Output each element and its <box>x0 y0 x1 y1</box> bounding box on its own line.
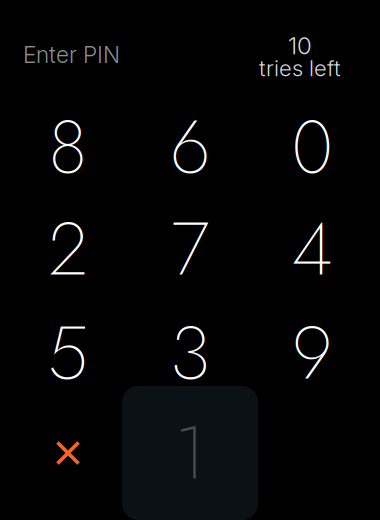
button[interactable]: Clear <box>7 408 129 498</box>
staticText: 6 <box>170 94 210 200</box>
button[interactable]: 7 <box>129 198 251 300</box>
staticText: 7 <box>171 196 209 302</box>
button[interactable]: 5 <box>7 302 129 404</box>
button[interactable]: 3 <box>129 302 251 404</box>
button[interactable]: 2 <box>7 198 129 300</box>
staticText: 0 <box>291 94 332 200</box>
staticText: 5 <box>47 300 88 406</box>
staticText: 3 <box>170 300 210 406</box>
staticText: 4 <box>291 196 332 302</box>
staticText: 9 <box>292 300 332 406</box>
staticText: 10 <box>288 31 312 60</box>
staticText: Enter PIN <box>23 41 120 68</box>
button[interactable]: 0 <box>251 96 373 198</box>
staticText: tries left <box>259 55 341 82</box>
button[interactable]: 8 <box>7 96 129 198</box>
button[interactable]: 6 <box>129 96 251 198</box>
button[interactable]: 4 <box>251 198 373 300</box>
button[interactable]: 9 <box>251 302 373 404</box>
staticText: 1 <box>174 400 205 506</box>
staticText: 2 <box>48 196 87 302</box>
staticText: 8 <box>48 94 87 200</box>
button[interactable]: 1 <box>122 386 258 520</box>
